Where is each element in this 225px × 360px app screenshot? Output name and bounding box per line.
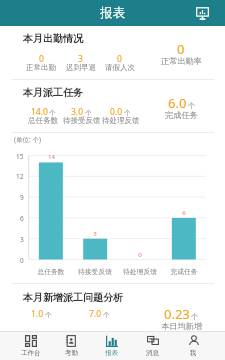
- staticText: 工作台: [21, 349, 41, 357]
- staticText: 7.0: [89, 308, 102, 320]
- staticText: 请假人次: [105, 63, 135, 72]
- staticText: 14: [48, 153, 55, 161]
- staticText: 0: [177, 40, 185, 58]
- staticText: 3.0: [71, 106, 84, 118]
- button[interactable]: Charts: [195, 6, 209, 20]
- staticText: 个: [188, 101, 195, 110]
- button[interactable]: 消息: [132, 332, 173, 360]
- staticText: 待接受反馈: [78, 267, 112, 276]
- button[interactable]: 报表: [91, 332, 132, 360]
- staticText: 3: [93, 230, 97, 238]
- staticText: 个: [124, 109, 131, 117]
- staticText: 报表: [100, 5, 125, 21]
- staticText: 个: [49, 109, 56, 117]
- staticText: 正常出勤: [26, 63, 56, 72]
- staticText: 14.0: [31, 106, 48, 118]
- staticText: 个: [45, 311, 52, 319]
- staticText: 总任务数: [37, 267, 65, 276]
- staticText: 15: [16, 152, 24, 161]
- staticText: 0: [20, 256, 24, 265]
- staticText: 1.0: [31, 308, 44, 320]
- button[interactable]: 考勤: [51, 332, 91, 360]
- staticText: 本月派工任务: [23, 86, 83, 99]
- staticText: 6: [182, 209, 186, 217]
- staticText: 完成任务: [170, 267, 198, 276]
- staticText: 总任务数: [28, 116, 58, 125]
- staticText: 12: [16, 172, 24, 181]
- staticText: 本月出勤情况: [23, 32, 83, 45]
- staticText: 0: [39, 53, 44, 65]
- staticText: 考勤: [65, 349, 78, 357]
- staticText: 3: [20, 235, 24, 244]
- staticText: 0.23: [164, 305, 190, 323]
- staticText: 本日均新增: [161, 321, 202, 331]
- staticText: 个: [191, 312, 198, 321]
- staticText: 3: [78, 53, 83, 65]
- staticText: 待接受反馈: [63, 116, 101, 125]
- staticText: 待处理反馈: [123, 267, 157, 276]
- staticText: 6: [20, 214, 24, 223]
- staticText: 消息: [146, 349, 159, 357]
- staticText: 个: [103, 311, 110, 319]
- staticText: 完成任务: [165, 110, 198, 120]
- staticText: 6.0: [168, 94, 187, 112]
- staticText: 待处理反馈: [102, 116, 140, 125]
- staticText: 本月新增派工问题分析: [23, 291, 123, 304]
- staticText: (单位: 个): [14, 135, 41, 144]
- staticText: 我: [190, 349, 197, 357]
- staticText: 迟到早退: [66, 63, 96, 72]
- staticText: 9: [20, 193, 24, 202]
- button[interactable]: 我: [173, 332, 214, 360]
- staticText: 0: [138, 251, 142, 259]
- staticText: 报表: [105, 349, 118, 357]
- staticText: 个: [85, 109, 92, 117]
- staticText: 0.0: [110, 106, 123, 118]
- staticText: 正常出勤率: [161, 56, 202, 66]
- button[interactable]: 工作台: [11, 332, 51, 360]
- staticText: 0: [117, 53, 122, 65]
